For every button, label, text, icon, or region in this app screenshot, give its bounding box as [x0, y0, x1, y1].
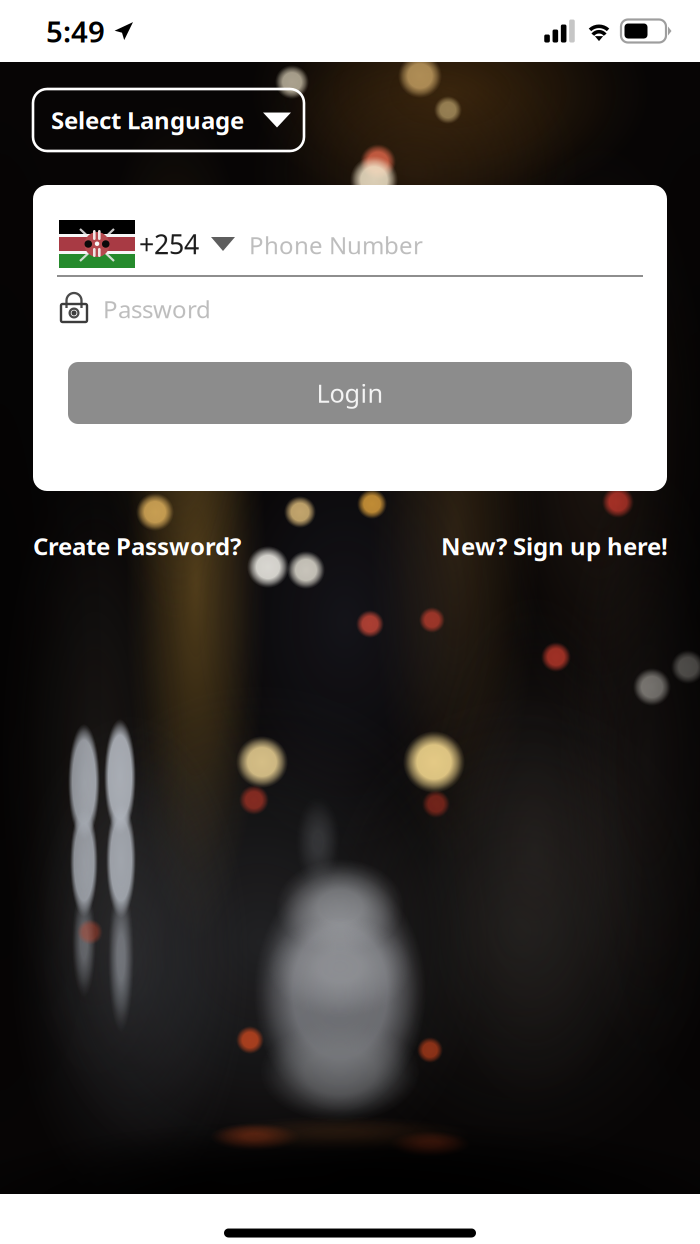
button[interactable]: Select Language — [33, 89, 304, 151]
staticText: Create Password? — [33, 530, 241, 562]
staticText: Password — [103, 293, 211, 325]
staticText: Login — [316, 376, 383, 410]
staticText: +254 — [139, 226, 199, 262]
button[interactable]: New? Sign up here! — [441, 530, 668, 562]
staticText: Select Language — [51, 104, 244, 136]
staticText: New? Sign up here! — [441, 530, 668, 562]
button[interactable]: Login — [68, 362, 632, 424]
button[interactable]: Create Password? — [33, 530, 241, 562]
staticText: 5:49 — [46, 11, 105, 50]
button[interactable]: Select country — [33, 185, 109, 233]
staticText: Phone Number — [249, 229, 423, 261]
